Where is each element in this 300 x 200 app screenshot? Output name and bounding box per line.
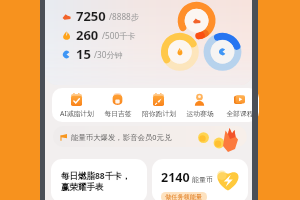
button[interactable]: 全部课程 — [220, 88, 259, 122]
staticText: 运动赛场 — [186, 109, 214, 118]
button[interactable]: 2140 — [152, 159, 248, 200]
button[interactable]: 每日燃脂88千卡， 赢荣耀手表 — [51, 159, 147, 200]
staticText: 全部课程 — [226, 109, 254, 118]
staticText: /30分钟 — [94, 49, 123, 60]
button[interactable]: AI减脂计划 — [56, 88, 97, 122]
staticText: /500千卡 — [102, 30, 136, 41]
staticText: 做任务领能量 — [165, 193, 203, 200]
staticText: 7250 — [76, 7, 106, 25]
staticText: 15 — [76, 45, 91, 63]
button[interactable]: 运动赛场 — [179, 88, 220, 122]
staticText: 每日吉签 — [104, 109, 132, 118]
staticText: 陪你跑计划 — [142, 109, 176, 118]
staticText: 每日燃脂88千卡， 赢荣耀手表 — [61, 170, 131, 193]
staticText: 能量币大爆发，影音会员0元兑 — [71, 132, 172, 142]
button[interactable]: 陪你跑计划 — [138, 88, 179, 122]
button[interactable]: 能量币大爆发，影音会员0元兑 — [53, 126, 247, 147]
staticText: AI减脂计划 — [60, 109, 94, 118]
staticText: 2140 — [161, 169, 190, 186]
button[interactable]: 每日吉签 — [97, 88, 138, 122]
staticText: /8888步 — [109, 11, 139, 22]
staticText: 能量币 — [192, 175, 213, 184]
staticText: 260 — [76, 26, 99, 44]
